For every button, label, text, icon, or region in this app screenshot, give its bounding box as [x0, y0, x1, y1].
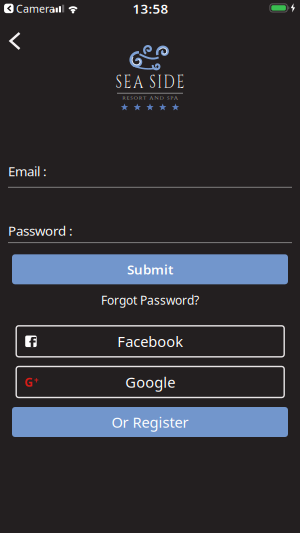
staticText: Email :: [8, 162, 47, 180]
staticText: Forgot Password?: [101, 292, 199, 308]
staticText: E: [117, 71, 127, 94]
staticText: I: [159, 71, 165, 94]
button[interactable]: G: [16, 366, 284, 397]
button[interactable]: Submit: [12, 254, 288, 284]
staticText: D: [169, 91, 178, 105]
staticText: Facebook: [117, 332, 183, 351]
staticText: f: [29, 332, 36, 355]
staticText: Google: [125, 372, 175, 392]
button[interactable]: Forgot Password?: [101, 292, 199, 308]
staticText: [144, 91, 147, 105]
staticText: O: [117, 91, 126, 105]
button[interactable]: f: [16, 326, 284, 357]
staticText: [143, 71, 147, 94]
staticText: R: [127, 91, 134, 105]
staticText: G: [24, 374, 33, 390]
staticText: E: [183, 71, 193, 94]
staticText: Or Register: [111, 412, 188, 432]
staticText: A: [129, 71, 141, 94]
staticText: S: [149, 71, 157, 94]
staticText: 13:58: [132, 0, 168, 17]
staticText: +: [34, 375, 39, 386]
staticText: Submit: [127, 260, 173, 278]
staticText: A: [149, 91, 157, 105]
staticText: N: [158, 91, 167, 105]
button[interactable]: Back: [0, 26, 30, 56]
staticText: Camera: [16, 1, 55, 16]
staticText: Password :: [8, 222, 73, 239]
button[interactable]: Or Register: [12, 407, 288, 437]
staticText: [179, 91, 182, 105]
staticText: T: [136, 91, 143, 105]
staticText: D: [167, 71, 181, 94]
